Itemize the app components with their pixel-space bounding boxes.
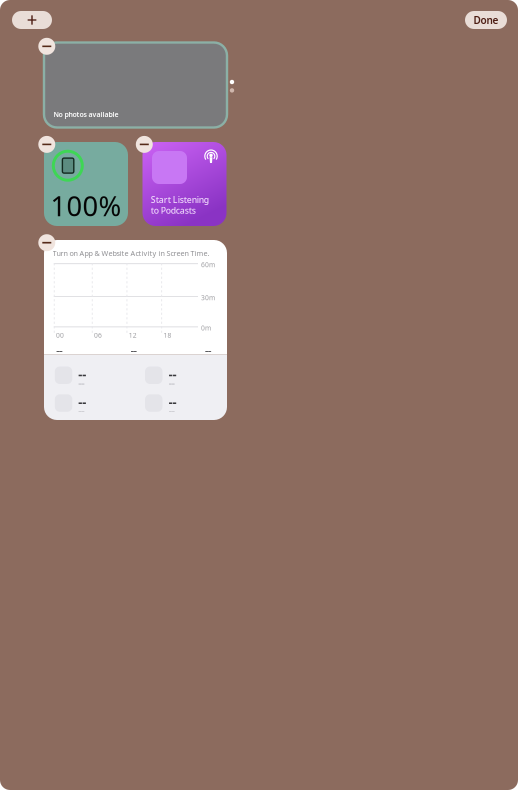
staticText: No photos available [53,109,118,119]
button[interactable]: Remove widget [38,234,55,251]
staticText: -- [205,343,211,357]
button[interactable]: 100% [44,142,128,226]
staticText: 100% [51,187,122,224]
staticText: -- [168,366,176,383]
staticText: -- [130,343,136,357]
staticText: 0m [201,323,211,332]
staticText: Start Listening [151,194,209,206]
button[interactable]: Remove widget [38,38,55,55]
button[interactable]: Remove widget [38,136,55,153]
staticText: -- [78,375,84,390]
staticText: 06 [94,331,102,340]
staticText: -- [168,403,174,417]
staticText: 00 [56,331,64,340]
staticText: 12 [129,331,137,340]
staticText: 30m [201,293,215,302]
staticText: Turn on App & Website Activity in Screen… [53,248,210,258]
staticText: -- [78,393,86,411]
staticText: 18 [163,331,171,340]
staticText: Done [473,13,498,27]
button[interactable]: Turn on App & Website Activity in Screen… [44,240,227,420]
button[interactable]: Start Listening [142,142,226,226]
staticText: to Podcasts [151,205,196,216]
staticText: 60m [201,260,215,269]
staticText: -- [168,375,174,390]
button[interactable]: Add widget [12,11,52,29]
button[interactable]: Done [465,11,507,29]
staticText: -- [56,343,62,357]
button[interactable]: Remove widget [136,136,153,153]
staticText: -- [168,393,176,411]
button[interactable]: No photos available [44,42,227,127]
staticText: -- [78,366,86,383]
staticText: -- [78,403,84,417]
